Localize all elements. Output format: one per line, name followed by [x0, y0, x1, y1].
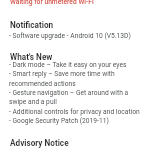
- button[interactable]: Waiting for unmetered Wi-Fi: [0, 0, 150, 150]
- staticText: recommended actions: [9, 80, 76, 88]
- staticText: Notification: [10, 20, 54, 30]
- staticText: What's New: [10, 52, 53, 62]
- staticText: - Google Security Patch (2019-11): [9, 117, 109, 125]
- staticText: - Smart reply – Save more time with: [9, 70, 115, 78]
- staticText: - Gesture navigation – Get around with a: [9, 89, 129, 97]
- staticText: - Dark mode – Take it easy on your eyes: [9, 61, 127, 69]
- staticText: swipe and a pull: [9, 98, 57, 106]
- staticText: Advisory Notice: [10, 138, 69, 148]
- staticText: - Additional controls for privacy and lo…: [9, 108, 140, 116]
- staticText: - Software upgrade - Android 10 (V5.13D): [9, 32, 131, 40]
- staticText: Waiting for unmetered Wi-Fi: [10, 0, 94, 6]
